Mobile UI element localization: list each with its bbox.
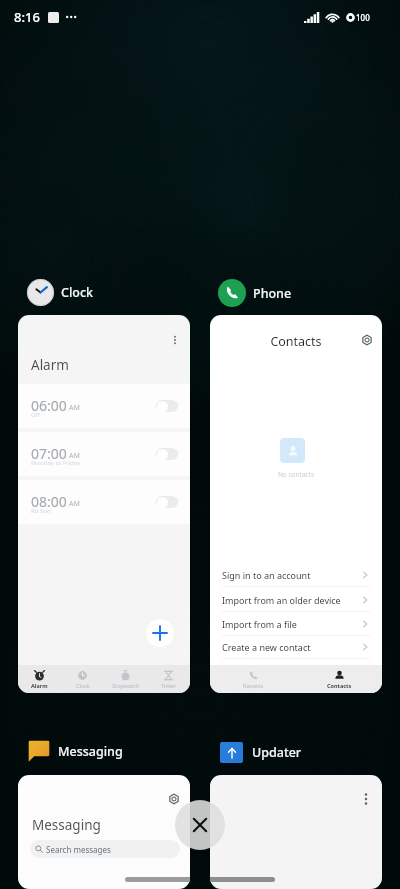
button[interactable]: More options xyxy=(18,315,190,693)
staticText: AM xyxy=(69,403,80,413)
button[interactable]: Settings xyxy=(18,775,190,889)
staticText: 8:16 xyxy=(14,8,40,26)
staticText: 08:00 xyxy=(31,492,67,511)
button[interactable]: Search messages xyxy=(30,840,180,858)
button[interactable]: Phone xyxy=(218,279,292,307)
button[interactable]: Import from an older device xyxy=(210,588,382,612)
button[interactable]: Settings xyxy=(359,332,375,348)
staticText: Import from an older device xyxy=(222,594,341,606)
staticText: Recents xyxy=(243,682,264,689)
staticText: Alarm xyxy=(31,356,69,374)
button[interactable]: More options xyxy=(210,775,382,889)
staticText: 06:00 xyxy=(31,396,67,415)
staticText: Import from a file xyxy=(222,618,297,630)
staticText: Contacts xyxy=(327,682,352,689)
staticText: Sign in to an account xyxy=(222,569,311,581)
button[interactable]: More options xyxy=(167,332,183,348)
staticText: Stopwatch xyxy=(112,682,140,689)
button[interactable]: 07:00 xyxy=(18,432,190,476)
button[interactable]: Recents xyxy=(210,665,296,693)
staticText: Messaging xyxy=(32,816,101,834)
button[interactable]: Sign in to an account xyxy=(210,563,382,587)
button[interactable]: Close all xyxy=(175,800,225,850)
button[interactable]: Add alarm xyxy=(146,619,174,647)
staticText: Alarm xyxy=(31,682,48,689)
staticText: Search messages xyxy=(46,844,111,855)
staticText: No contacts xyxy=(210,470,382,479)
button[interactable]: Clock xyxy=(61,665,104,693)
button[interactable]: Contacts xyxy=(296,665,382,693)
staticText: Monday to Friday xyxy=(31,459,81,467)
staticText: Clock xyxy=(76,682,90,689)
staticText: Timer xyxy=(161,682,176,689)
button[interactable]: 06:00 xyxy=(18,384,190,428)
button[interactable]: Messaging xyxy=(27,739,123,763)
button[interactable]: More options xyxy=(358,791,374,807)
staticText: Contacts xyxy=(210,333,382,350)
button[interactable]: Stopwatch xyxy=(104,665,147,693)
button[interactable]: Settings xyxy=(166,791,182,807)
staticText: Updater xyxy=(252,744,302,761)
staticText: AM xyxy=(69,499,80,509)
staticText: Phone xyxy=(253,285,292,302)
button[interactable]: Toggle alarm xyxy=(156,448,178,460)
staticText: Rd Sun xyxy=(31,507,51,515)
staticText: 07:00 xyxy=(31,444,67,463)
button[interactable]: Toggle alarm xyxy=(156,400,178,412)
button[interactable]: Contacts xyxy=(210,315,382,693)
staticText: Off xyxy=(31,411,40,419)
staticText: Messaging xyxy=(58,743,123,760)
staticText: 100 xyxy=(356,12,370,23)
staticText: AM xyxy=(69,451,80,461)
button[interactable]: Timer xyxy=(147,665,190,693)
button[interactable]: Alarm xyxy=(18,665,61,693)
button[interactable]: Toggle alarm xyxy=(156,496,178,508)
button[interactable]: Clock xyxy=(27,279,94,306)
button[interactable]: Create a new contact xyxy=(210,635,382,659)
button[interactable]: Import from a file xyxy=(210,612,382,636)
staticText: Clock xyxy=(61,284,94,301)
staticText: Create a new contact xyxy=(222,641,311,653)
button[interactable]: 08:00 xyxy=(18,480,190,524)
button[interactable]: Updater xyxy=(218,739,302,766)
